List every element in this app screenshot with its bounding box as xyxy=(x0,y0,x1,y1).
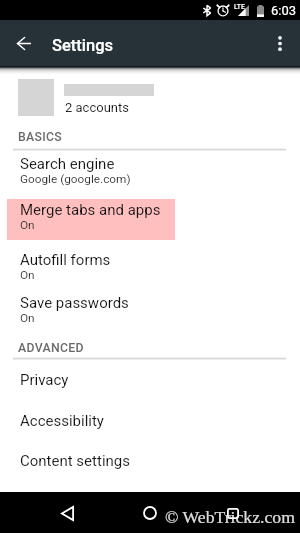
button[interactable]: 2 accounts xyxy=(0,72,300,122)
staticText: Save passwords xyxy=(20,294,129,312)
staticText: Content settings xyxy=(20,452,130,470)
staticText: Privacy xyxy=(20,371,69,389)
button[interactable]: Back xyxy=(53,499,81,527)
staticText: On xyxy=(20,311,35,325)
button[interactable]: Search engine xyxy=(0,155,300,200)
button[interactable]: Privacy xyxy=(0,365,300,405)
staticText: Search engine xyxy=(20,155,115,173)
staticText: Google (google.com) xyxy=(20,172,131,186)
button[interactable]: More options xyxy=(264,28,295,59)
button[interactable]: Accessibility xyxy=(0,406,300,446)
staticText: 2 accounts xyxy=(65,100,129,115)
button[interactable]: Save passwords xyxy=(0,294,300,339)
staticText: © WebTrickz.com xyxy=(165,507,295,527)
staticText: 6:03 xyxy=(271,3,297,18)
staticText: On xyxy=(20,268,35,282)
button[interactable]: Autofill forms xyxy=(0,251,300,296)
staticText: LTE xyxy=(234,3,245,11)
staticText: Merge tabs and apps xyxy=(20,201,161,219)
staticText: Accessibility xyxy=(20,412,104,430)
button[interactable]: Navigate up xyxy=(8,28,39,59)
staticText: BASICS xyxy=(18,130,63,144)
staticText: Settings xyxy=(52,36,114,55)
button[interactable]: Recent apps xyxy=(219,499,247,527)
staticText: ADVANCED xyxy=(18,341,84,355)
button[interactable]: Home xyxy=(136,499,164,527)
button[interactable]: Merge tabs and apps xyxy=(0,201,300,246)
button[interactable]: Content settings xyxy=(0,446,300,486)
staticText: On xyxy=(20,218,35,232)
staticText: Autofill forms xyxy=(20,251,111,269)
